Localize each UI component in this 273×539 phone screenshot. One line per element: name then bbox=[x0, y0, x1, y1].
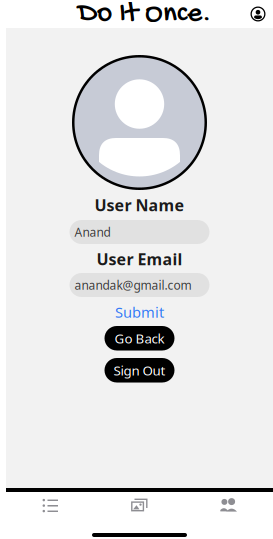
staticText: User Email bbox=[96, 248, 182, 270]
staticText: anandak@gmail.com bbox=[74, 277, 191, 293]
staticText: Go Back bbox=[114, 329, 164, 347]
staticText: Do It Once. bbox=[78, 0, 211, 32]
button[interactable]: Account bbox=[245, 2, 271, 26]
button[interactable]: Sign Out bbox=[104, 358, 174, 382]
button[interactable]: Submit bbox=[107, 304, 172, 320]
staticText: Sign Out bbox=[113, 361, 165, 379]
button[interactable]: Tasks bbox=[6, 498, 95, 512]
staticText: User Name bbox=[94, 194, 184, 216]
button[interactable]: Friends bbox=[184, 498, 273, 512]
button[interactable]: Photos bbox=[95, 498, 184, 512]
staticText: Anand bbox=[74, 224, 110, 240]
staticText: Submit bbox=[115, 302, 164, 322]
button[interactable]: Go Back bbox=[104, 326, 174, 350]
